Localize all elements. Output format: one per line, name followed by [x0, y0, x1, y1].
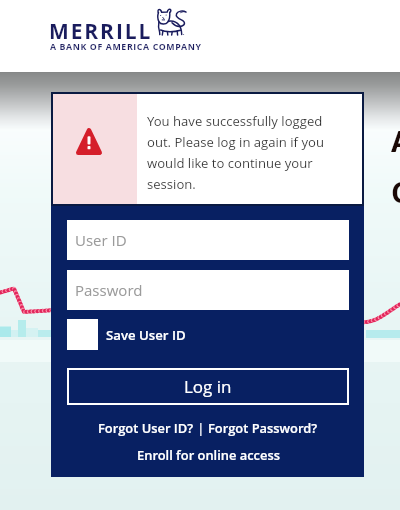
button[interactable]: Forgot Password? — [208, 419, 318, 437]
button[interactable]: Save User ID — [67, 319, 186, 350]
staticText: A better Connection — [391, 121, 400, 212]
staticText: You have successfully logged out. Please… — [147, 112, 333, 193]
button[interactable]: User ID — [67, 220, 349, 260]
other: Warning — [76, 128, 102, 155]
button[interactable]: Enroll for online access — [137, 446, 280, 464]
staticText: User ID — [75, 230, 127, 250]
button[interactable]: Password — [67, 270, 349, 310]
button[interactable]: Log in — [67, 368, 349, 405]
staticText: Password — [75, 280, 143, 300]
staticText: Log in — [184, 375, 232, 398]
staticText: Save User ID — [106, 326, 186, 344]
staticText: MERRILL — [49, 17, 153, 46]
button[interactable]: Forgot User ID? — [98, 419, 194, 437]
staticText: | — [194, 419, 208, 437]
staticText: A BANK OF AMERICA COMPANY — [50, 41, 202, 53]
